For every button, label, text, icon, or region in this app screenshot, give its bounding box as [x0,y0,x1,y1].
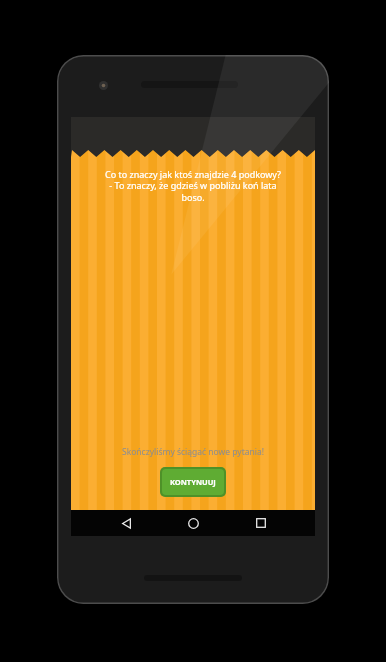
staticText: Co to znaczy jak ktoś znajdzie 4 podkowy… [79,168,307,204]
button[interactable]: Home [180,510,206,536]
staticText: Skończyliśmy ściągać nowe pytania! [71,446,315,458]
button[interactable]: KONTYNUUJ [162,469,224,495]
staticText: KONTYNUUJ [170,477,216,487]
button[interactable]: Back [113,510,139,536]
button[interactable]: Recent apps [248,510,274,536]
